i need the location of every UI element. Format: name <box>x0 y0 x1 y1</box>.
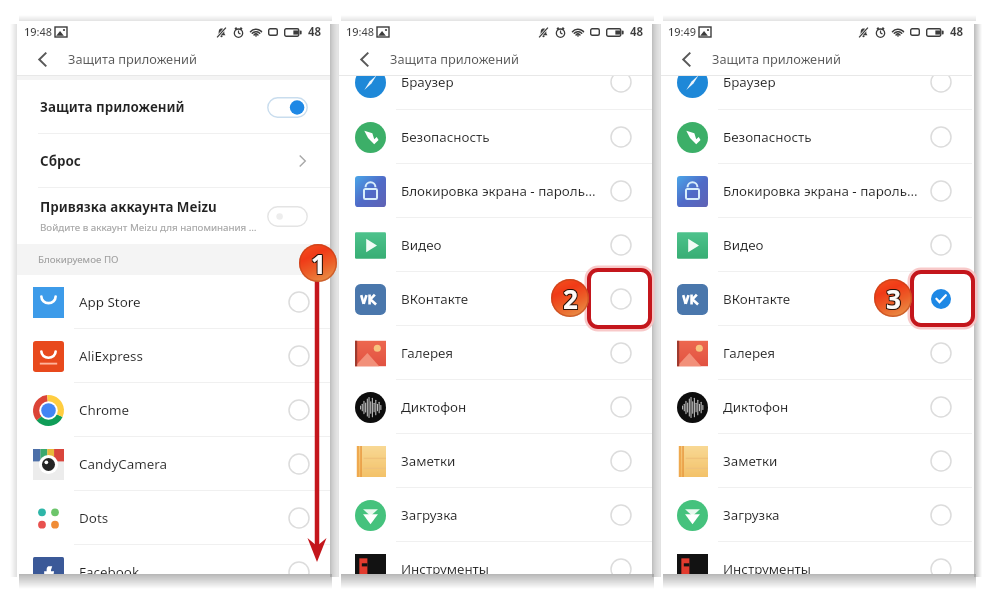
staticText: 3 <box>886 282 901 317</box>
staticText: Привязка аккаунта Meizu <box>40 198 217 216</box>
button[interactable]: Сброс <box>17 134 330 188</box>
staticText: Диктофон <box>401 398 604 416</box>
staticText: 19:48 <box>346 24 375 39</box>
staticText: Защита приложений <box>390 50 519 67</box>
staticText: 19:48 <box>24 24 53 39</box>
button[interactable]: Инструменты <box>661 542 972 574</box>
staticText: 1 <box>312 246 327 281</box>
button[interactable]: Защита приложений <box>17 80 330 134</box>
button[interactable]: Видео <box>339 218 652 272</box>
staticText: AliExpress <box>79 347 282 365</box>
button[interactable]: Браузер <box>661 76 972 110</box>
button[interactable]: ВКонтакте <box>339 272 652 326</box>
button[interactable]: Загрузка <box>339 488 652 542</box>
staticText: 3 <box>887 282 902 317</box>
staticText: 19:49 <box>668 24 697 39</box>
button[interactable]: Привязка аккаунта Meizu <box>17 188 330 244</box>
button[interactable]: ВКонтакте <box>661 272 972 326</box>
staticText: 1 <box>312 247 327 282</box>
staticText: 48 <box>630 24 644 40</box>
staticText: 3 <box>885 282 900 317</box>
button[interactable]: Безопасность <box>339 110 652 164</box>
staticText: Загрузка <box>723 506 924 524</box>
staticText: Галерея <box>723 344 924 362</box>
button[interactable]: Chrome <box>17 383 330 437</box>
button[interactable]: Галерея <box>661 326 972 380</box>
staticText: Защита приложений <box>40 98 267 116</box>
staticText: Защита приложений <box>68 50 197 67</box>
staticText: Безопасность <box>401 128 604 146</box>
staticText: 2 <box>564 282 579 317</box>
staticText: Защита приложений <box>712 50 841 67</box>
staticText: Facebook <box>79 563 282 574</box>
staticText: 2 <box>562 280 577 315</box>
staticText: Видео <box>401 236 604 254</box>
staticText: ВКонтакте <box>401 290 604 308</box>
button[interactable]: CandyCamera <box>17 437 330 491</box>
staticText: 1 <box>310 246 325 281</box>
button[interactable]: Back <box>29 46 55 72</box>
button[interactable]: Безопасность <box>661 110 972 164</box>
button[interactable]: AliExpress <box>17 329 330 383</box>
staticText: 2 <box>562 281 577 316</box>
button[interactable]: Браузер <box>339 76 652 110</box>
button[interactable]: Видео <box>661 218 972 272</box>
staticText: 3 <box>885 281 900 316</box>
staticText: CandyCamera <box>79 455 282 473</box>
button[interactable]: Блокировка экрана - пароль... <box>661 164 972 218</box>
staticText: Безопасность <box>723 128 924 146</box>
staticText: 3 <box>887 280 902 315</box>
staticText: Войдите в аккаунт Meizu для напоминания … <box>40 221 261 234</box>
staticText: 2 <box>563 281 578 316</box>
staticText: App Store <box>79 293 282 311</box>
staticText: 1 <box>310 245 325 280</box>
staticText: 3 <box>886 281 901 316</box>
staticText: 48 <box>308 24 322 40</box>
staticText: Сброс <box>40 152 299 170</box>
button[interactable]: Галерея <box>339 326 652 380</box>
staticText: Инструменты <box>723 560 924 574</box>
staticText: Блокируемое ПО <box>38 253 119 266</box>
button[interactable]: Заметки <box>661 434 972 488</box>
button[interactable]: Facebook <box>17 545 330 574</box>
staticText: 1 <box>310 247 325 282</box>
button[interactable]: Диктофон <box>339 380 652 434</box>
staticText: 1 <box>311 247 326 282</box>
staticText: 1 <box>311 246 326 281</box>
button[interactable]: Диктофон <box>661 380 972 434</box>
staticText: Диктофон <box>723 398 924 416</box>
staticText: 1 <box>312 245 327 280</box>
staticText: 3 <box>886 280 901 315</box>
staticText: Инструменты <box>401 560 604 574</box>
staticText: Браузер <box>401 76 604 91</box>
staticText: 2 <box>562 282 577 317</box>
staticText: Браузер <box>723 76 924 91</box>
staticText: Dots <box>79 509 282 527</box>
staticText: 48 <box>950 24 964 40</box>
staticText: ВКонтакте <box>723 290 924 308</box>
button[interactable]: App Store <box>17 275 330 329</box>
staticText: 2 <box>564 281 579 316</box>
staticText: 3 <box>885 280 900 315</box>
button[interactable]: Блокировка экрана - пароль... <box>339 164 652 218</box>
button[interactable]: Инструменты <box>339 542 652 574</box>
button[interactable]: Back <box>673 46 699 72</box>
staticText: 1 <box>311 245 326 280</box>
staticText: 2 <box>563 282 578 317</box>
staticText: Блокировка экрана - пароль... <box>723 182 924 200</box>
staticText: 2 <box>564 280 579 315</box>
staticText: Загрузка <box>401 506 604 524</box>
button[interactable]: Dots <box>17 491 330 545</box>
staticText: 3 <box>887 281 902 316</box>
button[interactable]: Загрузка <box>661 488 972 542</box>
button[interactable]: Заметки <box>339 434 652 488</box>
staticText: Галерея <box>401 344 604 362</box>
staticText: Chrome <box>79 401 282 419</box>
staticText: Видео <box>723 236 924 254</box>
staticText: Заметки <box>401 452 604 470</box>
staticText: 2 <box>563 280 578 315</box>
staticText: Блокировка экрана - пароль... <box>401 182 604 200</box>
button[interactable]: Back <box>351 46 377 72</box>
staticText: Заметки <box>723 452 924 470</box>
